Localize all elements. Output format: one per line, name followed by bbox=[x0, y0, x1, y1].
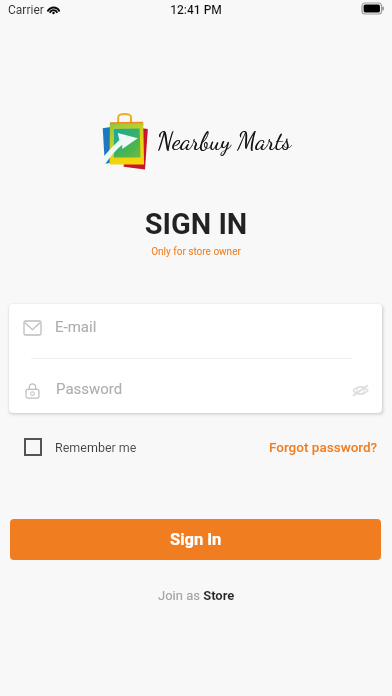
staticText: Nearbuy Marts bbox=[157, 126, 292, 156]
button[interactable]: E-mail bbox=[9, 304, 382, 358]
staticText: 12:41 PM bbox=[0, 3, 392, 17]
staticText: Only for store owner bbox=[0, 246, 392, 258]
staticText: Password bbox=[56, 380, 123, 398]
staticText: E-mail bbox=[55, 318, 97, 336]
staticText: Join as Store bbox=[158, 588, 235, 603]
staticText: Carrier bbox=[8, 3, 44, 17]
staticText: Forgot password? bbox=[269, 439, 378, 455]
button[interactable]: Sign In bbox=[10, 519, 381, 560]
button[interactable]: Show password bbox=[345, 375, 375, 405]
button[interactable]: Password bbox=[9, 359, 382, 413]
staticText: Remember me bbox=[55, 440, 137, 455]
staticText: Nearbuy Marts bbox=[157, 126, 292, 156]
button[interactable]: Remember me bbox=[0, 438, 137, 456]
button[interactable]: Join as Store bbox=[158, 588, 235, 603]
staticText: Sign In bbox=[170, 530, 222, 549]
button[interactable]: Forgot password? bbox=[269, 439, 392, 455]
staticText: SIGN IN bbox=[0, 207, 392, 241]
